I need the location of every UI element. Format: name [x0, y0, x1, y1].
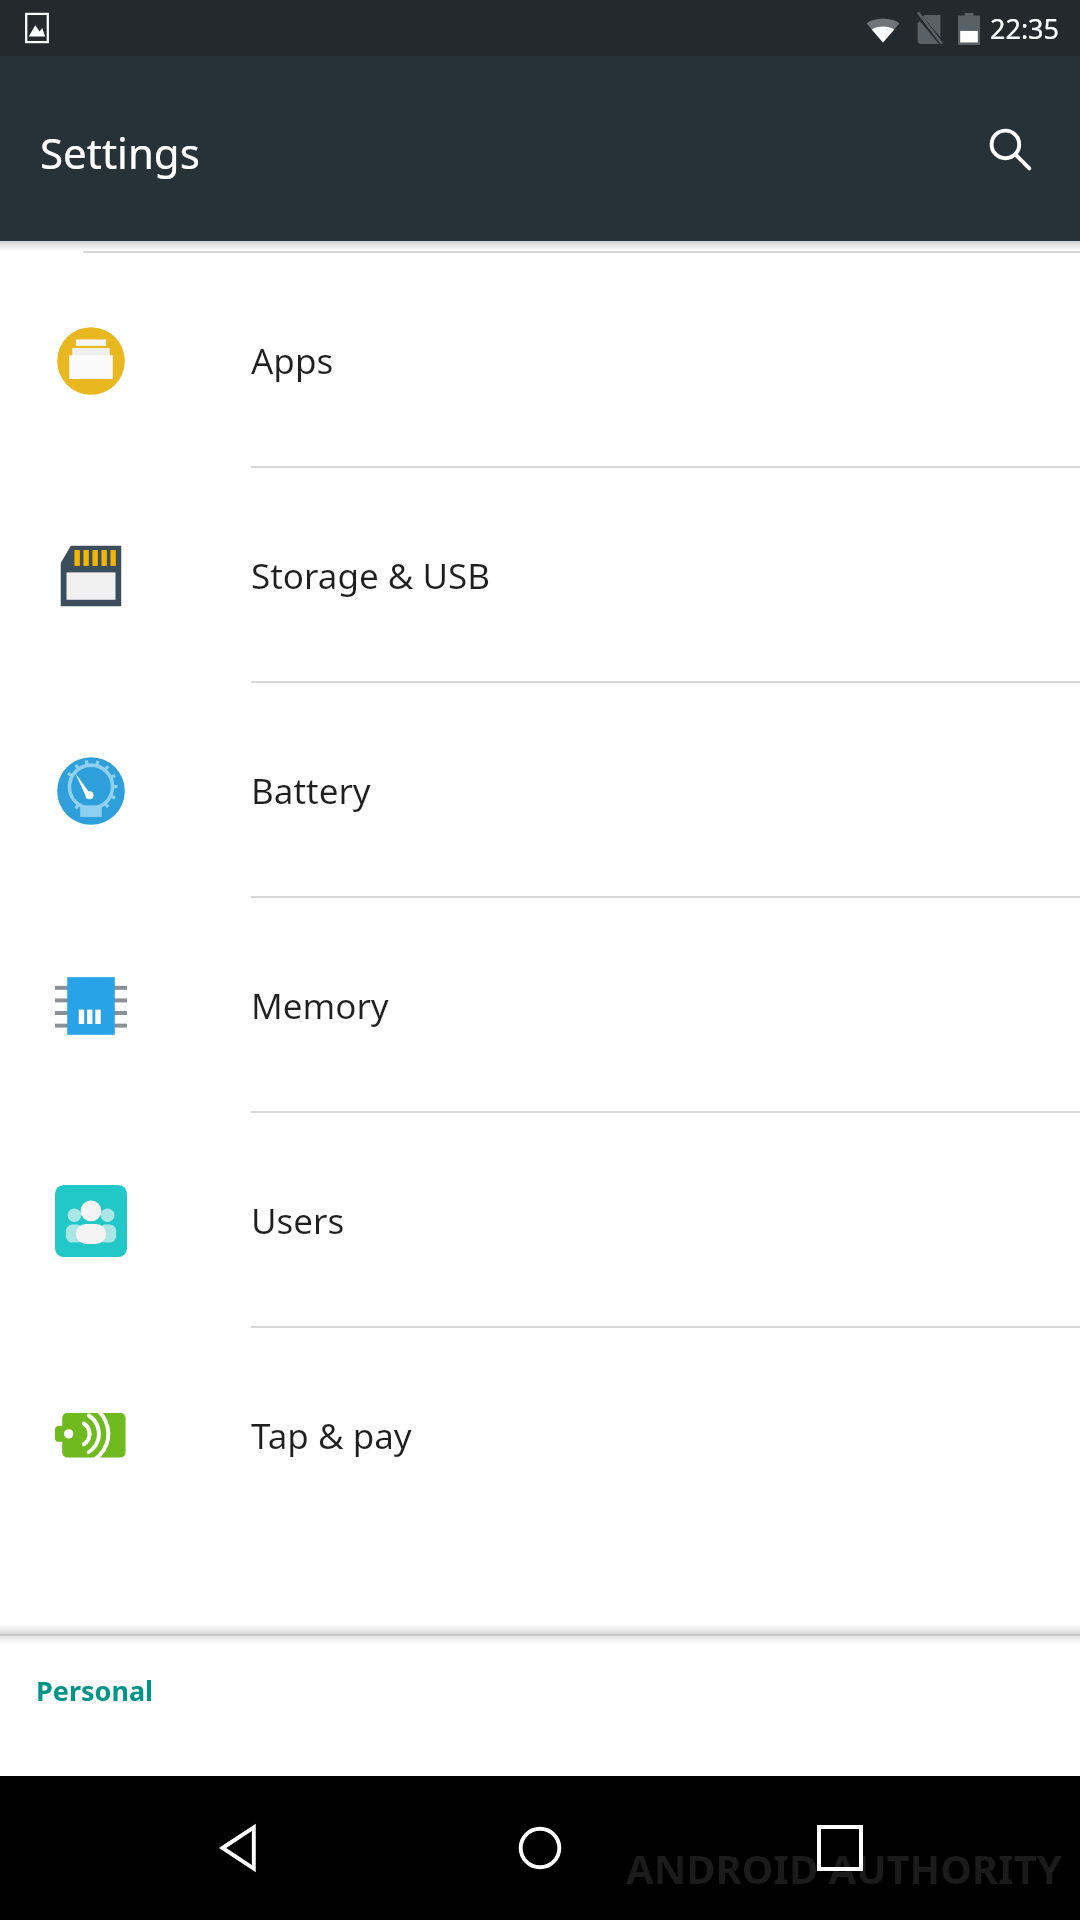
button[interactable]: Battery: [0, 683, 1080, 898]
button[interactable]: Tap & pay: [0, 1328, 1080, 1543]
button[interactable]: Recents: [780, 1788, 900, 1908]
button[interactable]: Back: [180, 1788, 300, 1908]
button[interactable]: Search: [968, 107, 1052, 191]
staticText: Settings: [40, 124, 200, 181]
button[interactable]: Memory: [0, 898, 1080, 1113]
staticText: Tap & pay: [251, 1412, 412, 1460]
button[interactable]: Apps: [0, 253, 1080, 468]
button[interactable]: Users: [0, 1113, 1080, 1328]
button[interactable]: Personal: [0, 1644, 1080, 1736]
staticText: Storage & USB: [251, 552, 491, 600]
staticText: Battery: [251, 767, 371, 815]
staticText: 22:35: [990, 10, 1060, 47]
staticText: Apps: [251, 337, 334, 385]
button[interactable]: Storage & USB: [0, 468, 1080, 683]
staticText: Users: [251, 1197, 345, 1245]
staticText: Personal: [36, 1672, 154, 1709]
button[interactable]: Home: [480, 1788, 600, 1908]
staticText: ANDROID AUTHORITY: [626, 1841, 1062, 1895]
staticText: Memory: [251, 982, 389, 1030]
